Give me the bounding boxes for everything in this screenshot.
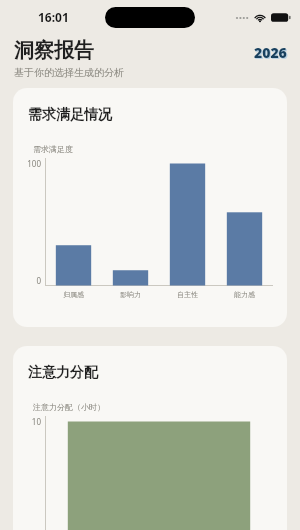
button[interactable]: 需求满足情况 [13, 88, 287, 327]
staticText: 0 [36, 275, 41, 286]
staticText: 归属感 [63, 290, 84, 299]
staticText: 需求满足度 [33, 144, 73, 154]
staticText: 16:01 [38, 9, 69, 25]
staticText: 2026 [254, 43, 287, 62]
button[interactable]: 2026 [253, 42, 289, 64]
staticText: 注意力分配 [28, 364, 98, 382]
staticText: 需求满足情况 [28, 106, 112, 124]
staticText: 洞察报告 [14, 38, 94, 63]
staticText: 自主性 [177, 290, 198, 299]
staticText: 10 [31, 416, 41, 427]
staticText: 注意力分配（小时） [33, 402, 105, 412]
staticText: 2026 [255, 44, 288, 63]
staticText: 100 [27, 158, 41, 169]
staticText: 影响力 [120, 290, 141, 299]
button[interactable]: 注意力分配 [13, 346, 287, 530]
staticText: 基于你的选择生成的分析 [14, 66, 124, 79]
staticText: 能力感 [234, 290, 255, 299]
